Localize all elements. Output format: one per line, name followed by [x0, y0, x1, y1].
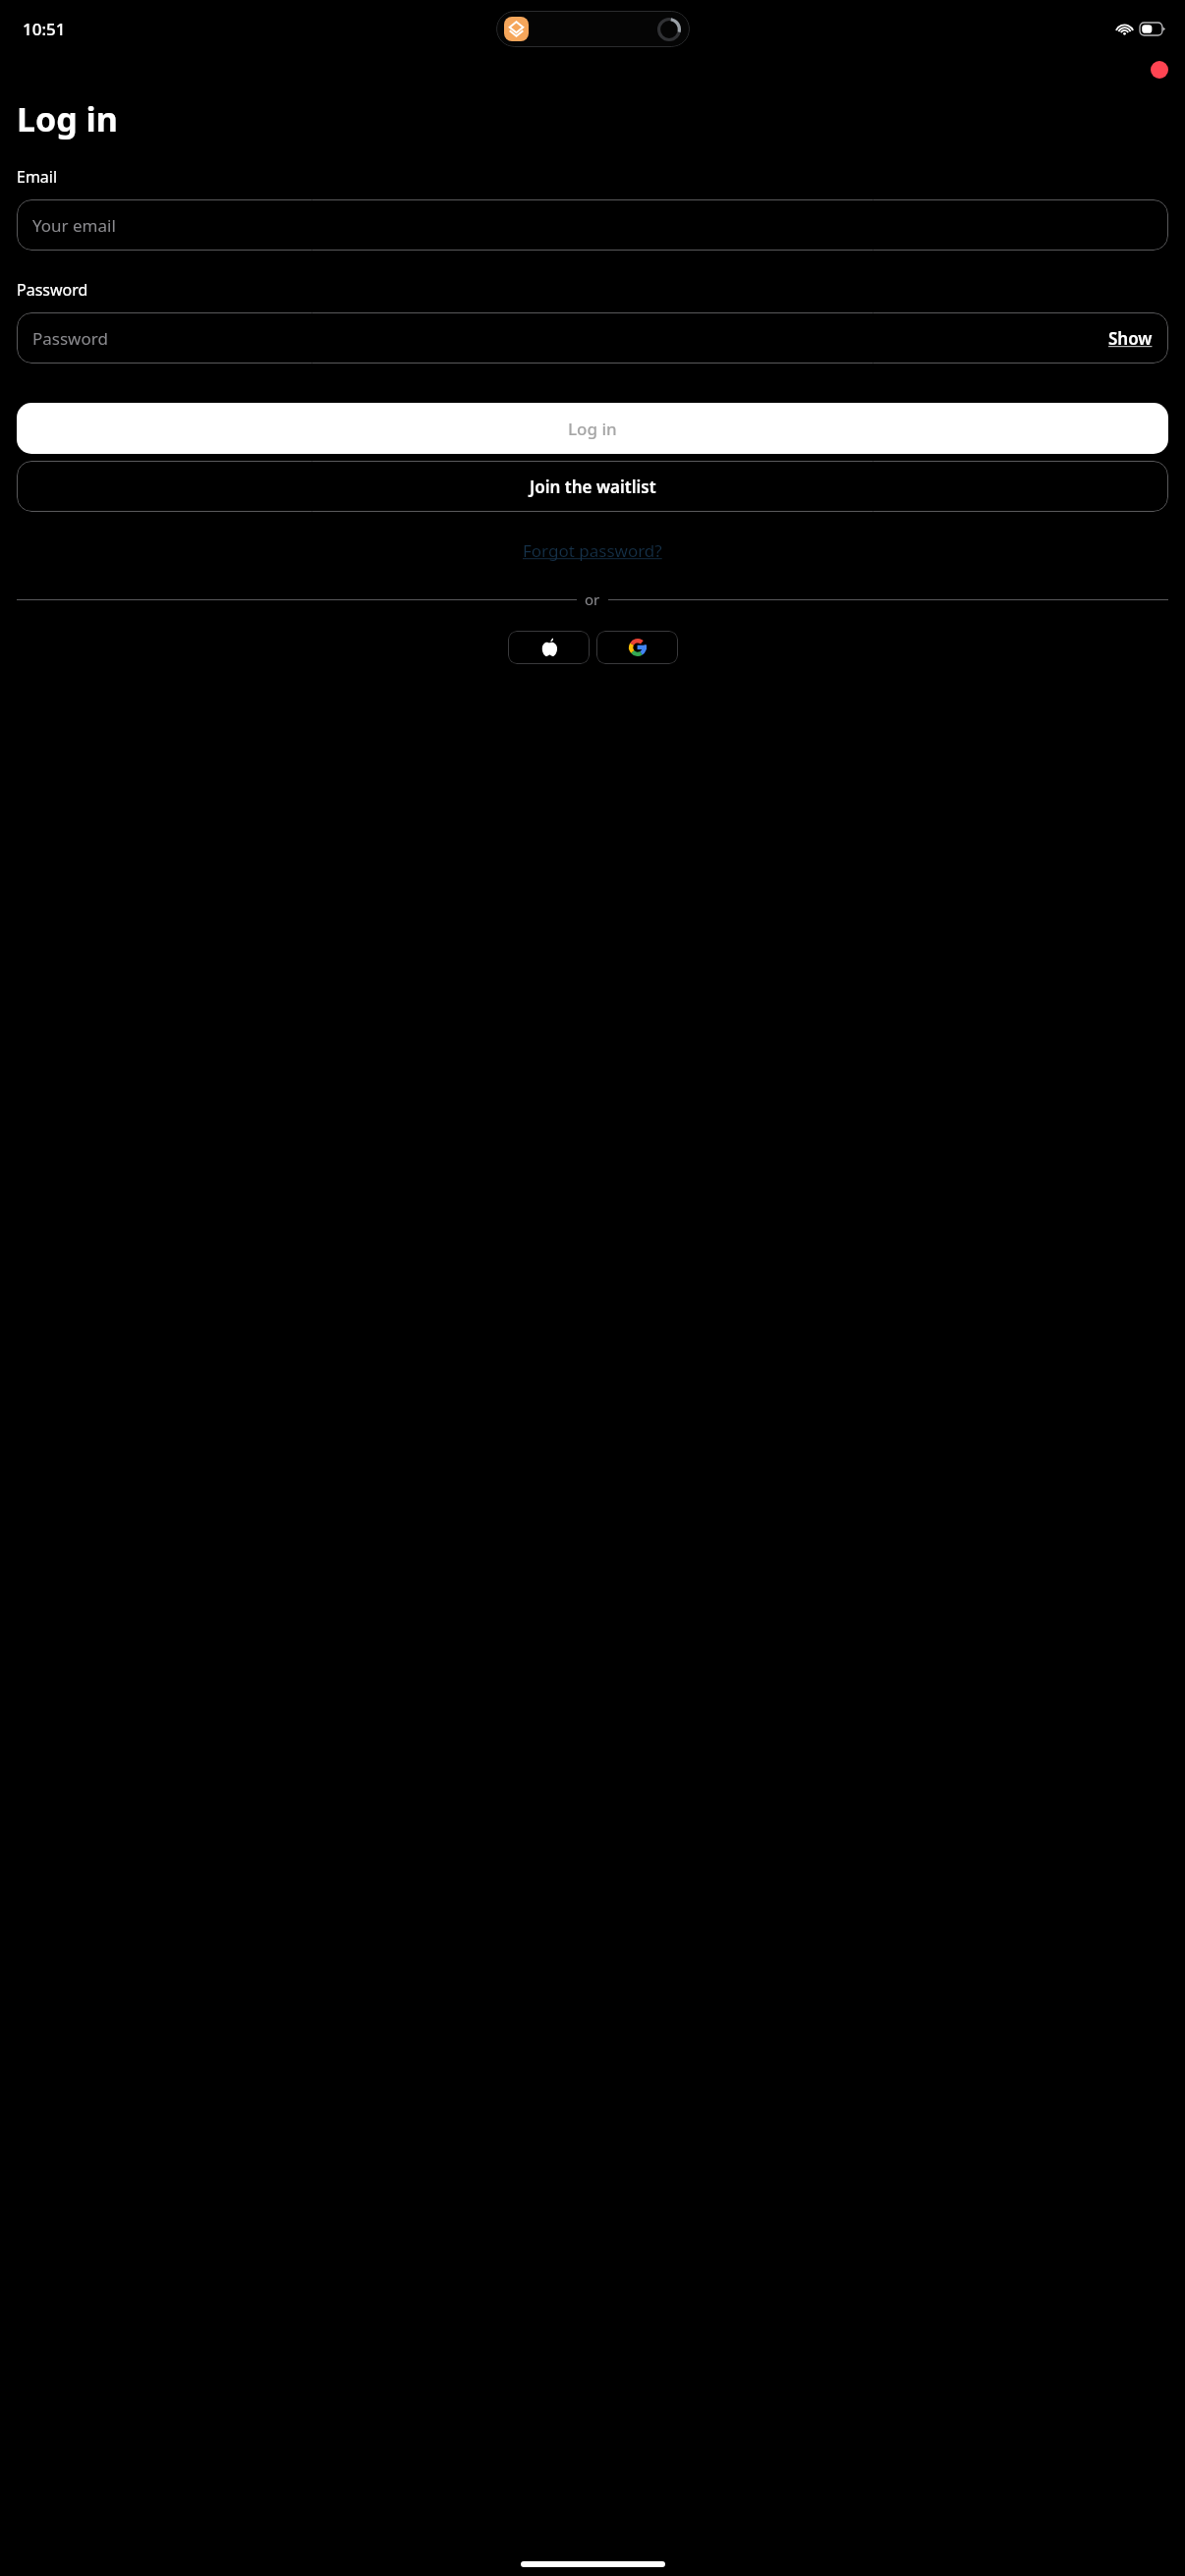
button[interactable]: Forgot password?: [523, 539, 662, 562]
staticText: Email: [17, 166, 58, 188]
button[interactable]: Your email: [17, 199, 1168, 251]
staticText: Password: [17, 279, 88, 301]
staticText: Show: [1108, 327, 1153, 350]
button[interactable]: Log in: [17, 403, 1168, 454]
button[interactable]: Show: [1108, 327, 1153, 350]
button[interactable]: Sign in with Google: [596, 631, 678, 664]
staticText: Forgot password?: [523, 539, 662, 562]
staticText: Log in: [17, 96, 118, 141]
staticText: Password: [32, 327, 108, 350]
button[interactable]: Sign in with Apple: [508, 631, 590, 664]
staticText: 10:51: [23, 18, 66, 40]
staticText: Log in: [568, 418, 617, 440]
staticText: Your email: [32, 214, 116, 237]
staticText: Join the waitlist: [530, 476, 656, 498]
staticText: or: [585, 589, 600, 609]
button[interactable]: Password: [17, 312, 1168, 364]
button[interactable]: Join the waitlist: [17, 461, 1168, 512]
